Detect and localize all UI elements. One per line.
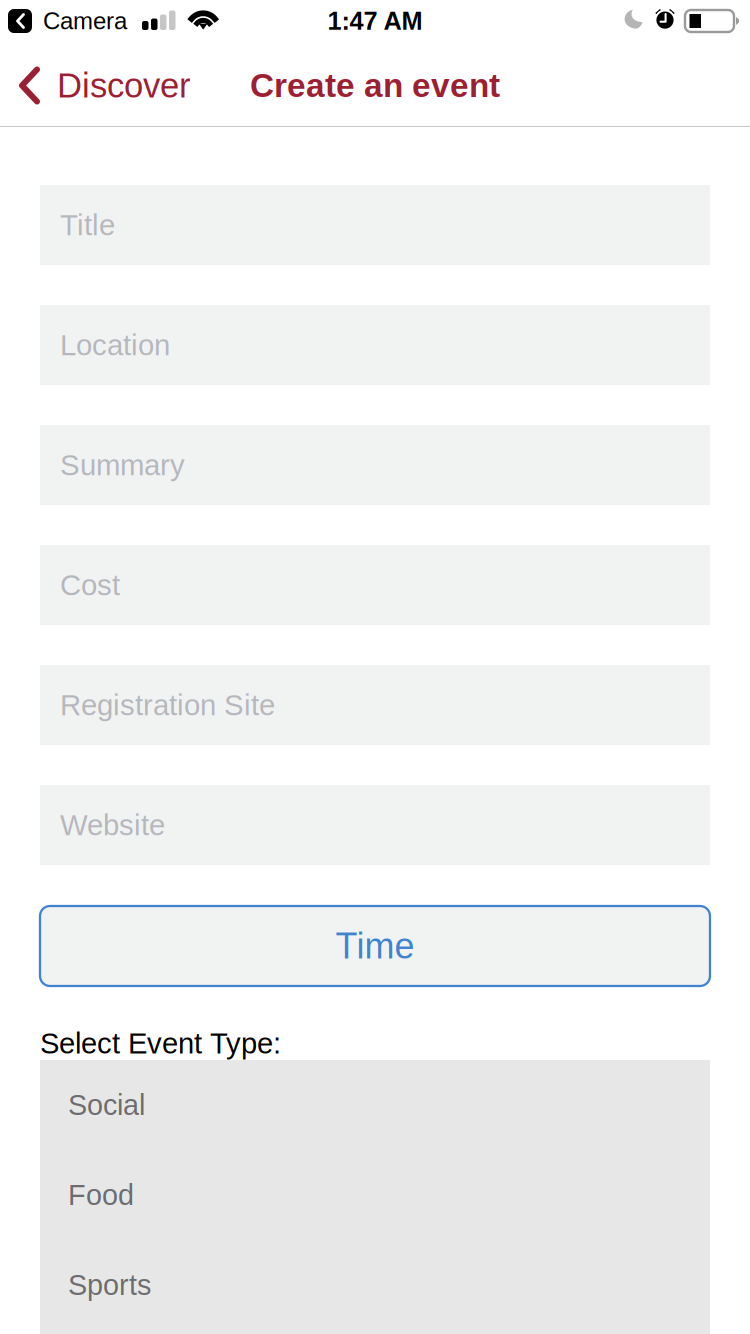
staticText: Sports xyxy=(68,1269,151,1301)
button[interactable]: Discover xyxy=(0,44,205,127)
staticText: Location xyxy=(60,329,170,361)
staticText: Create an event xyxy=(250,67,500,104)
button[interactable]: Cost xyxy=(40,545,710,625)
button[interactable]: Registration Site xyxy=(40,665,710,745)
button[interactable]: Title xyxy=(40,185,710,265)
button[interactable]: Time xyxy=(40,906,710,986)
staticText: Registration Site xyxy=(60,689,275,721)
staticText: Time xyxy=(335,926,414,966)
staticText: Food xyxy=(68,1179,134,1211)
staticText: Summary xyxy=(60,449,185,481)
staticText: Title xyxy=(60,209,115,241)
button[interactable]: Website xyxy=(40,785,710,865)
staticText: Cost xyxy=(60,569,120,601)
staticText: Camera xyxy=(43,8,127,34)
staticText: Social xyxy=(68,1089,145,1121)
staticText: Website xyxy=(60,809,165,841)
staticText: 1:47 AM xyxy=(327,7,422,35)
button[interactable]: Summary xyxy=(40,425,710,505)
staticText: Discover xyxy=(57,66,191,105)
staticText: Select Event Type: xyxy=(40,1027,281,1060)
button[interactable]: Location xyxy=(40,305,710,385)
